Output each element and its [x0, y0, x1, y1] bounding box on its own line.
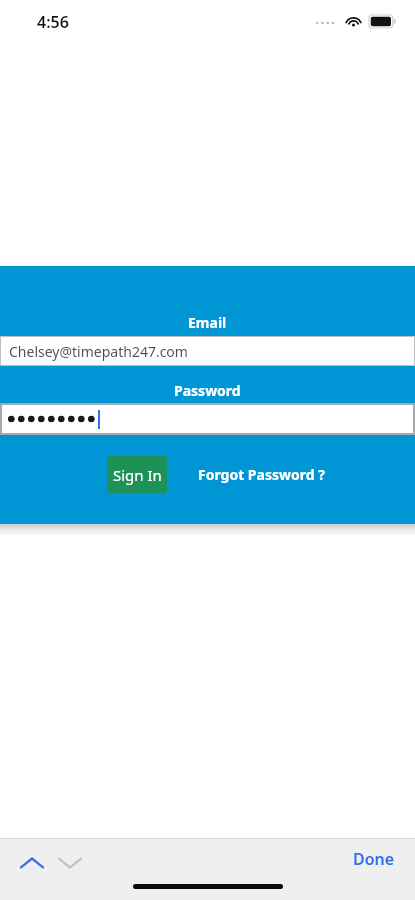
- button[interactable]: [0, 403, 415, 435]
- button[interactable]: Chelsey@timepath247.com: [0, 336, 415, 366]
- staticText: Chelsey@timepath247.com: [9, 342, 188, 361]
- button[interactable]: Sign In: [107, 456, 167, 493]
- staticText: Forgot Password ?: [198, 465, 325, 484]
- staticText: Sign In: [113, 465, 162, 485]
- button[interactable]: Done: [333, 840, 415, 878]
- button[interactable]: Next field: [52, 845, 88, 881]
- button[interactable]: Forgot Password ?: [196, 456, 327, 493]
- staticText: Password: [174, 381, 241, 400]
- button[interactable]: Previous field: [14, 845, 50, 881]
- staticText: Done: [353, 848, 395, 870]
- staticText: Email: [188, 313, 227, 332]
- staticText: 4:56: [37, 11, 69, 33]
